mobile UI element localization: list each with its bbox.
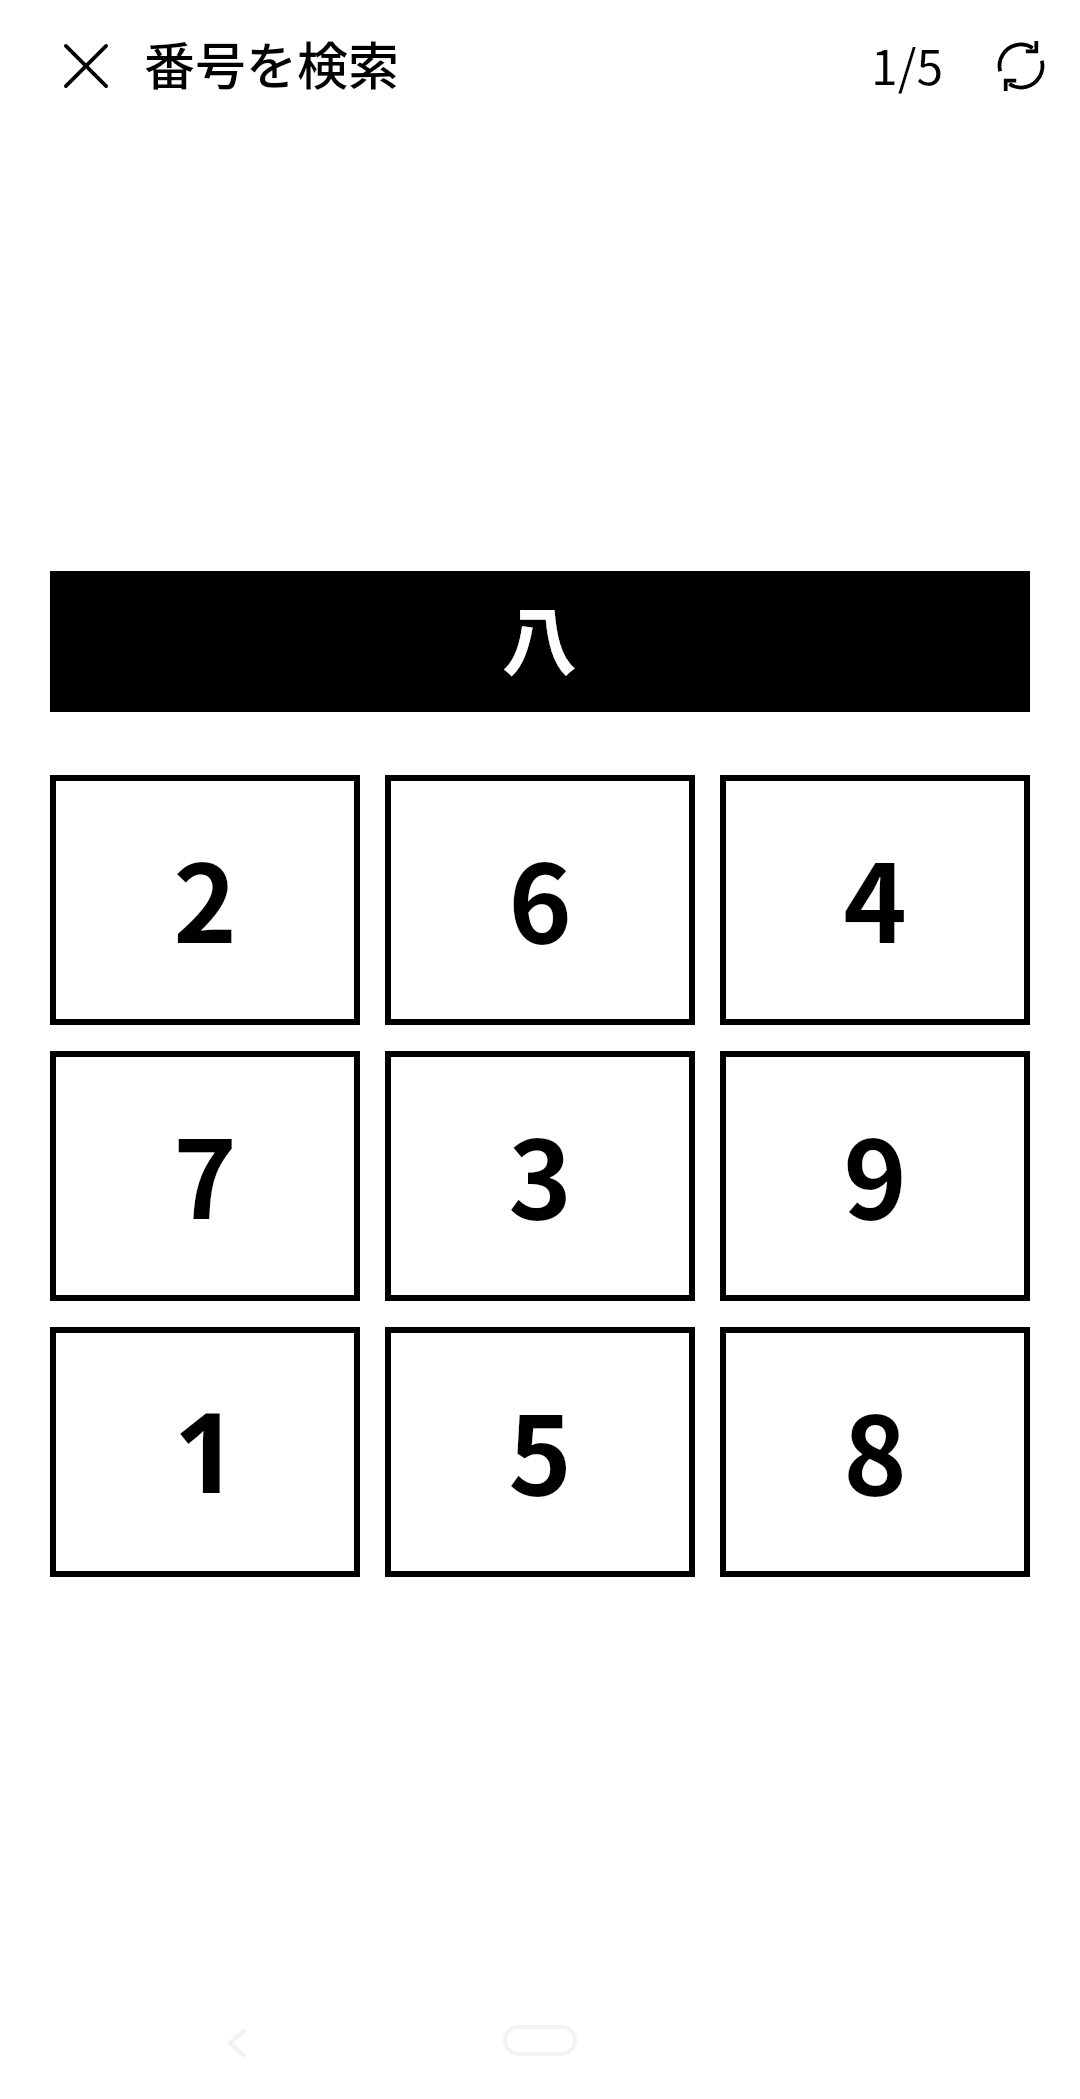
button[interactable]: 2 — [50, 775, 360, 1025]
staticText: 7 — [173, 1094, 237, 1250]
button[interactable]: 6 — [385, 775, 695, 1025]
button[interactable]: Close — [38, 18, 134, 114]
button[interactable]: 1 — [50, 1327, 360, 1577]
button[interactable]: 5 — [385, 1327, 695, 1577]
button[interactable]: 9 — [720, 1051, 1030, 1301]
button[interactable]: Refresh — [973, 18, 1069, 114]
button[interactable]: 4 — [720, 775, 1030, 1025]
staticText: 1 — [173, 1373, 238, 1526]
staticText: 1/5 — [871, 29, 944, 99]
staticText: 8 — [843, 1370, 907, 1526]
staticText: 八 — [502, 582, 578, 691]
staticText: 番号を検索 — [144, 26, 400, 100]
staticText: 6 — [508, 818, 572, 974]
staticText: 9 — [843, 1094, 907, 1250]
staticText: 2 — [173, 818, 237, 974]
button[interactable]: 7 — [50, 1051, 360, 1301]
button[interactable]: 8 — [720, 1327, 1030, 1577]
staticText: 4 — [843, 818, 907, 974]
staticText: 3 — [508, 1094, 572, 1250]
staticText: 5 — [508, 1370, 572, 1526]
button[interactable]: 3 — [385, 1051, 695, 1301]
